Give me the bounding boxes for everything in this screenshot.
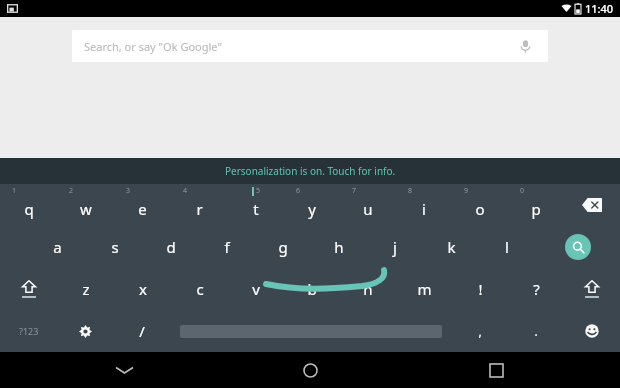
button[interactable]: 4 bbox=[171, 184, 228, 226]
staticText: e bbox=[138, 199, 147, 219]
button[interactable]: 3 bbox=[114, 184, 171, 226]
staticText: 7 bbox=[352, 186, 357, 196]
button[interactable]: h bbox=[311, 226, 367, 268]
staticText: Personalization is on. Touch for info. bbox=[225, 164, 396, 178]
button[interactable]: 6 bbox=[284, 184, 340, 226]
button[interactable]: Hide keyboard bbox=[62, 352, 186, 388]
button[interactable]: 8 bbox=[396, 184, 452, 226]
button[interactable]: Home bbox=[248, 352, 372, 388]
staticText: 2 bbox=[69, 186, 74, 196]
button[interactable]: n bbox=[340, 268, 396, 310]
staticText: w bbox=[80, 199, 92, 219]
button[interactable]: Settings bbox=[57, 310, 114, 352]
button[interactable]: ! bbox=[452, 268, 508, 310]
button[interactable]: a bbox=[29, 226, 86, 268]
button[interactable]: ?123 bbox=[0, 310, 57, 352]
staticText: 11:40 bbox=[585, 1, 614, 16]
button[interactable]: 5 bbox=[228, 184, 284, 226]
staticText: u bbox=[363, 199, 373, 219]
staticText: k bbox=[447, 237, 456, 257]
button[interactable]: Emoji bbox=[564, 310, 620, 352]
staticText: 1 bbox=[12, 186, 17, 196]
staticText: 4 bbox=[183, 186, 188, 196]
button[interactable]: l bbox=[479, 226, 535, 268]
staticText: q bbox=[24, 199, 34, 219]
staticText: Search, or say "Ok Google" bbox=[84, 39, 514, 54]
button[interactable]: g bbox=[255, 226, 311, 268]
button[interactable]: j bbox=[367, 226, 423, 268]
button[interactable]: 0 bbox=[508, 184, 564, 226]
staticText: y bbox=[308, 199, 316, 219]
button[interactable]: Shift bbox=[0, 268, 57, 310]
staticText: b bbox=[307, 279, 317, 299]
staticText: h bbox=[334, 237, 344, 257]
staticText: / bbox=[139, 321, 145, 341]
staticText: p bbox=[531, 199, 541, 219]
staticText: r bbox=[196, 199, 203, 219]
button[interactable]: c bbox=[171, 268, 228, 310]
button[interactable]: / bbox=[114, 310, 170, 352]
staticText: i bbox=[422, 199, 426, 219]
button[interactable]: m bbox=[396, 268, 452, 310]
staticText: 5 bbox=[256, 186, 261, 196]
staticText: ? bbox=[533, 279, 540, 299]
button[interactable]: z bbox=[57, 268, 114, 310]
staticText: 0 bbox=[520, 186, 525, 196]
staticText: n bbox=[363, 279, 373, 299]
button[interactable]: Search, or say "Ok Google" bbox=[72, 30, 548, 62]
staticText: f bbox=[224, 237, 230, 257]
staticText: , bbox=[478, 323, 482, 339]
staticText: c bbox=[196, 279, 204, 299]
button[interactable]: d bbox=[143, 226, 199, 268]
staticText: 9 bbox=[464, 186, 469, 196]
staticText: l bbox=[505, 237, 509, 257]
button[interactable]: Backspace bbox=[564, 184, 620, 226]
staticText: t bbox=[253, 199, 259, 219]
button[interactable]: s bbox=[86, 226, 143, 268]
button[interactable]: 1 bbox=[0, 184, 57, 226]
staticText: m bbox=[417, 279, 432, 299]
staticText: g bbox=[278, 237, 288, 257]
staticText: v bbox=[252, 279, 260, 299]
button[interactable]: ? bbox=[508, 268, 564, 310]
staticText: j bbox=[393, 237, 397, 257]
button[interactable]: Recent apps bbox=[434, 352, 558, 388]
button[interactable]: f bbox=[199, 226, 255, 268]
staticText: ! bbox=[478, 279, 483, 299]
staticText: a bbox=[53, 237, 62, 257]
button[interactable]: Personalization is on. Touch for info. bbox=[0, 158, 620, 184]
button[interactable]: 9 bbox=[452, 184, 508, 226]
button[interactable]: Search bbox=[535, 226, 620, 268]
button[interactable]: Space bbox=[170, 310, 452, 352]
staticText: 8 bbox=[408, 186, 413, 196]
staticText: . bbox=[534, 323, 538, 339]
button[interactable]: . bbox=[508, 310, 564, 352]
button[interactable]: 7 bbox=[340, 184, 396, 226]
button[interactable]: x bbox=[114, 268, 171, 310]
staticText: 3 bbox=[126, 186, 131, 196]
button[interactable]: Shift bbox=[564, 268, 620, 310]
staticText: ?123 bbox=[19, 325, 39, 337]
staticText: z bbox=[82, 279, 90, 299]
button[interactable]: Voice search bbox=[514, 35, 536, 57]
staticText: s bbox=[111, 237, 119, 257]
button[interactable]: k bbox=[423, 226, 479, 268]
staticText: 6 bbox=[296, 186, 301, 196]
staticText: d bbox=[166, 237, 176, 257]
button[interactable]: , bbox=[452, 310, 508, 352]
button[interactable]: b bbox=[284, 268, 340, 310]
staticText: x bbox=[139, 279, 147, 299]
button[interactable]: 2 bbox=[57, 184, 114, 226]
staticText: o bbox=[475, 199, 485, 219]
button[interactable]: v bbox=[228, 268, 284, 310]
